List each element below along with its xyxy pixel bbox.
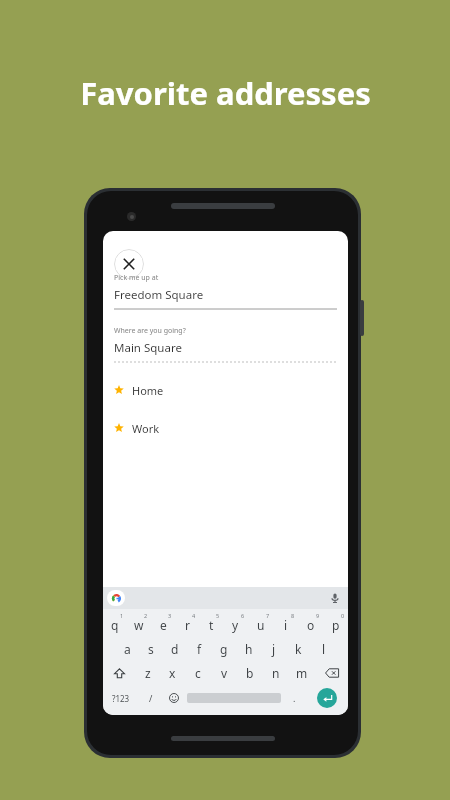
staticText: q [111,617,119,633]
staticText: Pick me up at [114,273,159,283]
staticText: 7 [266,612,270,619]
staticText: t [209,617,214,633]
button[interactable]: Pick me up at [114,273,337,310]
staticText: d [171,641,179,657]
button[interactable]: Home [114,381,337,399]
staticText: 4 [192,612,196,619]
staticText: 1 [120,612,124,619]
button[interactable]: Emoji [162,685,185,711]
button[interactable]: Google [107,590,125,606]
button[interactable]: e [151,613,175,637]
staticText: 3 [168,612,172,619]
staticText: Favorite addresses [80,72,371,114]
staticText: y [232,617,239,633]
staticText: Main Square [114,340,182,356]
staticText: m [296,665,308,681]
button[interactable]: a [115,637,139,661]
button[interactable]: d [163,637,187,661]
button[interactable]: p [323,613,348,637]
button[interactable]: Enter [317,688,337,708]
staticText: x [169,665,176,681]
button[interactable]: k [286,637,311,661]
button[interactable]: o [298,613,323,637]
staticText: z [145,665,151,681]
button[interactable]: / [139,685,162,711]
staticText: o [307,617,315,633]
staticText: ?123 [112,693,130,704]
staticText: b [246,665,254,681]
button[interactable]: Work [114,419,337,437]
staticText: n [272,665,280,681]
button[interactable]: . [283,685,306,711]
button[interactable]: c [185,661,211,685]
staticText: r [185,617,190,633]
button[interactable]: i [273,613,298,637]
staticText: c [195,665,201,681]
button[interactable]: Backspace [315,661,348,685]
staticText: f [197,641,202,657]
staticText: Freedom Square [114,287,204,303]
button[interactable]: n [263,661,289,685]
button[interactable]: r [175,613,199,637]
staticText: s [148,641,154,657]
button[interactable]: ?123 [103,685,139,711]
button[interactable]: w [127,613,151,637]
button[interactable]: q [103,613,127,637]
staticText: k [295,641,302,657]
staticText: w [134,617,144,633]
staticText: v [221,665,228,681]
button[interactable]: b [237,661,263,685]
staticText: u [257,617,265,633]
staticText: j [272,641,276,657]
button[interactable]: v [211,661,237,685]
staticText: Where are you going? [114,326,186,336]
button[interactable]: y [223,613,248,637]
staticText: p [332,617,340,633]
button[interactable]: Close [114,249,144,279]
staticText: / [149,692,153,704]
staticText: 0 [341,612,345,619]
button[interactable]: g [211,637,236,661]
button[interactable]: u [248,613,273,637]
staticText: h [245,641,253,657]
staticText: Work [132,421,160,436]
button[interactable]: t [199,613,223,637]
staticText: 8 [291,612,295,619]
staticText: Home [132,383,164,398]
button[interactable]: x [160,661,185,685]
staticText: 2 [144,612,148,619]
button[interactable]: m [289,661,315,685]
button[interactable]: f [187,637,211,661]
staticText: a [124,641,131,657]
button[interactable]: Shift [103,661,135,685]
staticText: l [322,641,326,657]
button[interactable]: z [135,661,160,685]
button[interactable]: Voice input [328,591,342,605]
staticText: i [284,617,288,633]
staticText: g [220,641,228,657]
staticText: 6 [241,612,245,619]
button[interactable]: h [236,637,261,661]
staticText: 9 [316,612,320,619]
button[interactable]: s [139,637,163,661]
button[interactable]: l [311,637,336,661]
staticText: . [293,692,296,704]
button[interactable]: Where are you going? [114,326,337,363]
button[interactable]: j [261,637,286,661]
staticText: 5 [216,612,220,619]
staticText: e [160,617,167,633]
